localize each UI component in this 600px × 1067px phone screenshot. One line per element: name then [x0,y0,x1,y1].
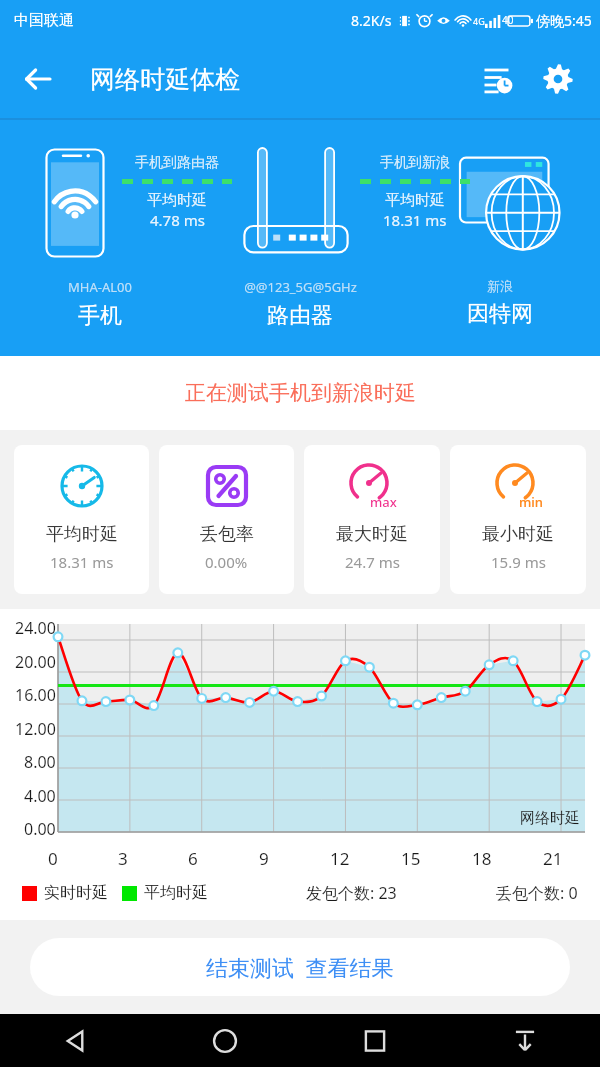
staticText: 24.00 [15,617,56,639]
staticText: 18 [472,847,492,870]
button[interactable]: History [474,55,522,103]
staticText: 9 [259,847,269,870]
button[interactable]: Back [14,55,62,103]
button[interactable]: max [304,445,440,594]
staticText: 网络时延 [520,809,580,828]
button[interactable]: Download [450,1014,600,1067]
staticText: 0 [48,847,58,870]
staticText: 4.78 ms [150,210,205,230]
staticText: 15 [401,847,421,870]
staticText: 中国联通 [14,11,74,30]
staticText: 手机 [78,302,122,330]
staticText: MHA-AL00 [68,278,132,296]
staticText: 40 [502,13,514,27]
staticText: 8.00 [24,751,56,773]
button[interactable]: min [450,445,586,594]
staticText: 最大时延 [336,523,408,546]
staticText: 0.00% [205,552,248,572]
staticText: 6 [188,847,198,870]
staticText: 平均时延 [46,523,118,546]
staticText: 15.9 ms [491,552,546,572]
staticText: 平均时延 [144,883,208,903]
staticText: 手机到路由器 [135,154,219,172]
staticText: min [519,493,543,511]
staticText: 12 [330,847,350,870]
staticText: max [370,493,397,511]
staticText: 21 [543,847,563,870]
staticText: 4.00 [24,785,56,807]
button[interactable]: 平均时延 [14,445,149,594]
staticText: 18.31 ms [50,552,114,572]
staticText: 平均时延 [385,191,445,210]
button[interactable]: Settings [534,55,582,103]
staticText: 新浪 [487,278,513,294]
staticText: 24.7 ms [345,552,400,572]
staticText: @@123_5G@5GHz [244,278,357,296]
button[interactable]: Back [0,1014,150,1067]
staticText: 8.2K/s [351,11,392,30]
staticText: 丢包个数: 0 [496,882,578,904]
staticText: 网络时延体检 [90,64,240,95]
staticText: 手机到新浪 [380,154,450,172]
button[interactable]: 丢包率 [159,445,294,594]
staticText: 最小时延 [482,523,554,546]
staticText: 丢包率 [200,523,254,546]
staticText: 因特网 [467,300,533,328]
staticText: 3 [118,847,128,870]
button[interactable]: 结束测试 查看结果 [30,938,570,996]
staticText: 16.00 [15,684,56,706]
staticText: 实时时延 [44,883,108,903]
staticText: 20.00 [15,651,56,673]
staticText: 发包个数: 23 [306,882,397,904]
staticText: 结束测试 查看结果 [206,952,394,982]
staticText: 路由器 [267,302,333,330]
staticText: 4G [473,15,485,27]
staticText: 18.31 ms [383,210,447,230]
staticText: 平均时延 [147,191,207,210]
staticText: 0.00 [24,818,56,840]
staticText: 12.00 [15,718,56,740]
staticText: 正在测试手机到新浪时延 [185,380,416,406]
button[interactable]: Recents [300,1014,450,1067]
staticText: 傍晚5:45 [536,11,592,30]
button[interactable]: Home [150,1014,300,1067]
